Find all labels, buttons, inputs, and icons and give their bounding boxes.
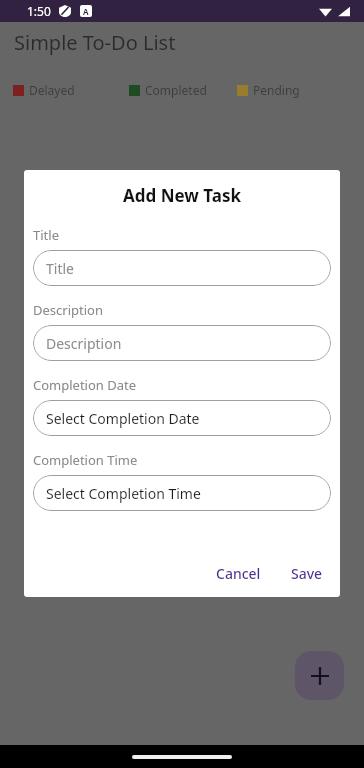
- staticText: Cancel: [216, 564, 261, 583]
- button[interactable]: Description: [33, 325, 331, 361]
- staticText: Select Completion Date: [46, 409, 200, 428]
- staticText: Description: [46, 334, 122, 353]
- staticText: Title: [46, 259, 74, 278]
- button[interactable]: Select Completion Time: [33, 475, 331, 511]
- staticText: Description: [33, 301, 103, 319]
- staticText: Title: [33, 226, 59, 244]
- staticText: 1:50: [27, 3, 51, 19]
- staticText: Save: [291, 564, 323, 583]
- staticText: Add New Task: [33, 184, 331, 207]
- staticText: Completed: [145, 82, 207, 98]
- staticText: Pending: [253, 82, 300, 98]
- button[interactable]: Save: [283, 560, 331, 587]
- staticText: Select Completion Time: [46, 484, 201, 503]
- staticText: Simple To-Do List: [14, 29, 176, 56]
- staticText: Delayed: [29, 82, 75, 98]
- button[interactable]: Cancel: [208, 560, 269, 587]
- staticText: Completion Time: [33, 451, 138, 469]
- staticText: Completion Date: [33, 376, 137, 394]
- button[interactable]: Select Completion Date: [33, 400, 331, 436]
- button[interactable]: Add task: [295, 651, 344, 700]
- staticText: A: [83, 6, 89, 17]
- button[interactable]: Title: [33, 250, 331, 286]
